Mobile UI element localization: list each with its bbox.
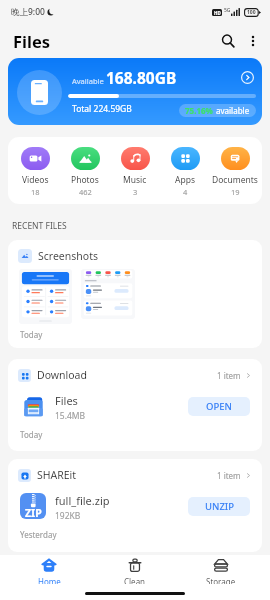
button[interactable]: OPEN [188, 397, 250, 416]
staticText: 5G [224, 7, 231, 14]
staticText: UNZIP [205, 500, 234, 513]
staticText: Available [72, 76, 104, 86]
staticText: RECENT FILES [12, 220, 67, 232]
staticText: available [216, 105, 250, 116]
staticText: Home [38, 576, 61, 584]
staticText: Documents [212, 174, 258, 186]
staticText: 100 [247, 9, 256, 16]
button[interactable]: More options [241, 29, 265, 53]
staticText: Files [13, 30, 51, 52]
button[interactable]: Music [110, 137, 160, 204]
staticText: 18 [31, 187, 40, 197]
button[interactable]: Home [6, 555, 92, 584]
button[interactable]: Storage details [8, 58, 262, 125]
staticText: full_file.zip [55, 493, 110, 508]
staticText: Total 224.59GB [72, 103, 132, 115]
button[interactable]: Photos [60, 137, 110, 204]
staticText: Apps [175, 174, 195, 186]
staticText: Yesterday [20, 529, 57, 540]
button[interactable]: Clean [92, 555, 178, 584]
button[interactable]: Storage [178, 555, 264, 584]
staticText: 1 item [217, 370, 241, 381]
button[interactable]: Download [8, 359, 262, 451]
button[interactable]: Videos [10, 137, 60, 204]
button[interactable]: Storage details [239, 69, 255, 85]
staticText: 75.16% [185, 105, 213, 116]
staticText: Photos [71, 174, 99, 186]
button[interactable]: Screenshots [8, 240, 262, 348]
staticText: Files [55, 393, 78, 408]
button[interactable]: Documents [210, 137, 260, 204]
staticText: OPEN [206, 400, 232, 413]
button[interactable]: UNZIP [188, 497, 250, 516]
staticText: 1 item [217, 470, 241, 481]
staticText: Storage [206, 576, 236, 584]
staticText: 19 [231, 187, 240, 197]
staticText: HD [214, 10, 221, 16]
button[interactable]: SHAREit [8, 459, 262, 552]
staticText: 3 [133, 187, 138, 197]
staticText: Music [123, 174, 147, 186]
button[interactable]: Search [215, 28, 241, 54]
staticText: 15.4MB [55, 410, 86, 419]
staticText: Today [20, 329, 43, 340]
staticText: 4 [183, 187, 188, 197]
staticText: ZIP [25, 506, 42, 519]
staticText: Clean [124, 576, 146, 584]
staticText: 462 [79, 187, 92, 197]
staticText: Download [37, 368, 87, 382]
staticText: Today [20, 429, 43, 440]
staticText: 晚上9:00 [11, 6, 45, 18]
staticText: Screenshots [38, 249, 98, 263]
staticText: 168.80GB [106, 67, 177, 88]
button[interactable]: Apps [160, 137, 210, 204]
staticText: 192KB [55, 510, 81, 519]
staticText: Videos [22, 174, 49, 186]
staticText: SHAREit [37, 468, 77, 482]
